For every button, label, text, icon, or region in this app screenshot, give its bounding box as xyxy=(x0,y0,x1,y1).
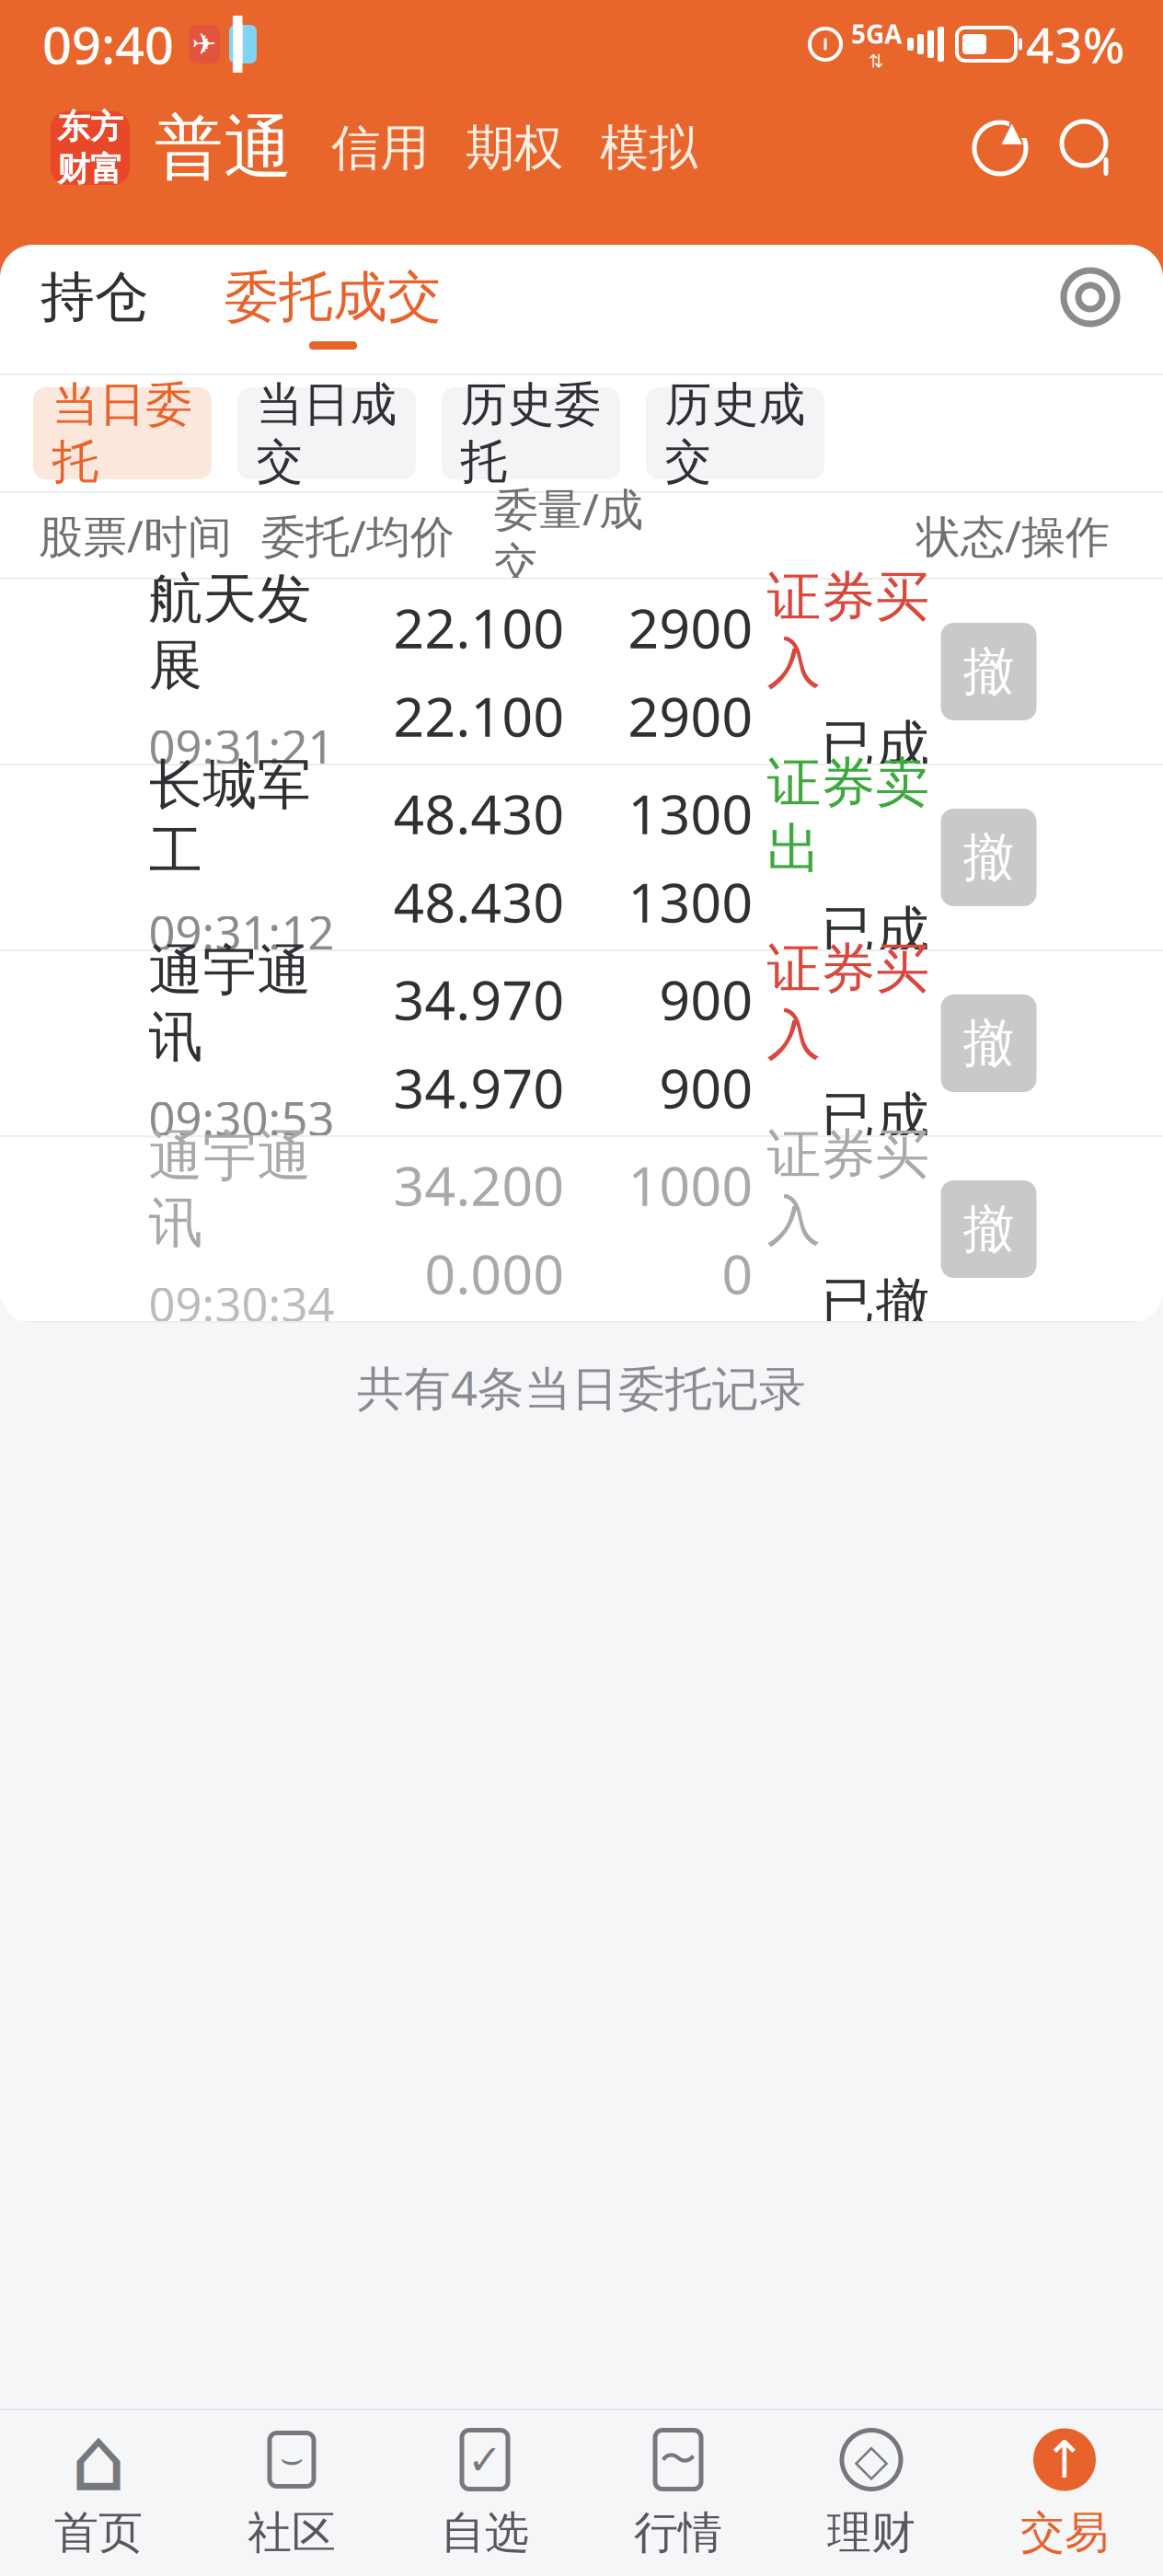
staticText: 首页 xyxy=(54,2506,143,2560)
staticText: 共有4条当日委托记录 xyxy=(357,1356,806,1418)
staticText: ⇅ xyxy=(869,51,884,72)
staticText: 1300 xyxy=(628,777,753,849)
staticText: 状态/操作 xyxy=(916,506,1110,565)
staticText: ⌂ xyxy=(70,2409,127,2510)
staticText: 社区 xyxy=(248,2506,336,2560)
staticText: 0.000 xyxy=(425,1237,564,1309)
staticText: 撤 xyxy=(963,640,1014,703)
staticText: ✓ xyxy=(467,2436,502,2483)
button[interactable]: 持仓 xyxy=(33,264,156,354)
staticText: 撤 xyxy=(963,826,1014,889)
staticText: 信用 xyxy=(331,118,429,178)
button[interactable]: 〜 xyxy=(581,2410,775,2576)
staticText: 34.970 xyxy=(393,1052,564,1123)
button[interactable]: 航天发展 xyxy=(0,580,1163,765)
staticText: 2900 xyxy=(628,592,753,663)
button[interactable]: 委托成交 xyxy=(217,264,449,354)
button[interactable]: 搜索 xyxy=(1056,116,1121,180)
staticText: 0 xyxy=(722,1237,753,1309)
button[interactable]: ⌣ xyxy=(195,2410,388,2576)
staticText: ▌▌ xyxy=(233,16,253,72)
button[interactable]: 当日成交 xyxy=(237,387,416,479)
button[interactable]: 设置 xyxy=(1054,261,1126,357)
staticText: 证券买入 xyxy=(767,564,930,696)
staticText: 已成 xyxy=(821,899,930,965)
staticText: 34.970 xyxy=(393,963,564,1035)
staticText: 证券买入 xyxy=(767,1121,930,1254)
button[interactable]: 撤 xyxy=(941,809,1036,906)
staticText: 历史委托 xyxy=(461,376,601,491)
button[interactable]: 撤 xyxy=(941,1180,1036,1278)
staticText: 48.430 xyxy=(393,866,564,937)
button[interactable]: 期权 xyxy=(454,118,575,178)
staticText: ◇ xyxy=(854,2435,888,2485)
staticText: 东方 xyxy=(57,107,123,147)
staticText: 当日委托 xyxy=(52,376,193,491)
staticText: 航天发展 xyxy=(149,566,311,699)
staticText: 09:31:21 xyxy=(149,715,334,777)
staticText: 期权 xyxy=(466,118,563,178)
staticText: 〜 xyxy=(660,2437,697,2482)
staticText: 当日成交 xyxy=(256,376,397,491)
staticText: 历史成交 xyxy=(665,376,806,491)
staticText: 09:30:34 xyxy=(149,1273,334,1335)
staticText: 43% xyxy=(1026,12,1124,77)
staticText: 委托成交 xyxy=(225,264,442,330)
staticText: 1000 xyxy=(628,1149,753,1221)
staticText: 行情 xyxy=(634,2506,722,2560)
staticText: 通宇通讯 xyxy=(149,938,311,1070)
button[interactable]: ↑ xyxy=(968,2410,1161,2576)
button[interactable]: 历史委托 xyxy=(442,387,620,479)
button[interactable]: ⌂ xyxy=(2,2410,195,2576)
staticText: 证券卖出 xyxy=(767,750,930,882)
button[interactable]: ◇ xyxy=(775,2410,968,2576)
staticText: 普通 xyxy=(155,106,293,190)
staticText: ▲ xyxy=(1002,116,1023,147)
button[interactable]: 刷新 xyxy=(968,116,1032,180)
staticText: 已撤 xyxy=(821,1271,930,1337)
staticText: 900 xyxy=(659,1052,753,1123)
staticText: 48.430 xyxy=(393,777,564,849)
staticText: 理财 xyxy=(827,2506,915,2560)
staticText: 长城军工 xyxy=(149,752,311,884)
staticText: 委托/均价 xyxy=(261,506,455,565)
staticText: 持仓 xyxy=(40,264,149,330)
button[interactable]: 撤 xyxy=(941,995,1036,1092)
button[interactable]: 长城军工 xyxy=(0,765,1163,951)
staticText: 09:31:12 xyxy=(149,901,334,963)
button[interactable]: 撤 xyxy=(941,623,1036,720)
button[interactable]: 通宇通讯 xyxy=(0,1137,1163,1323)
staticText: 2900 xyxy=(628,680,753,752)
button[interactable]: 模拟 xyxy=(588,118,709,178)
staticText: 1300 xyxy=(628,866,753,937)
button[interactable]: 当日委托 xyxy=(33,387,212,479)
staticText: 已成 xyxy=(821,713,930,779)
staticText: 交易 xyxy=(1020,2506,1109,2560)
staticText: 模拟 xyxy=(600,118,697,178)
staticText: 证券买入 xyxy=(767,936,930,1068)
staticText: 5GA xyxy=(851,17,902,51)
button[interactable]: 信用 xyxy=(319,118,441,178)
staticText: 已成 xyxy=(821,1085,930,1151)
staticText: ✈ xyxy=(192,27,217,61)
staticText: 22.100 xyxy=(393,592,564,663)
staticText: 22.100 xyxy=(393,680,564,752)
staticText: 股票/时间 xyxy=(39,506,232,565)
button[interactable]: 普通 xyxy=(143,106,305,190)
staticText: 900 xyxy=(659,963,753,1035)
staticText: ⌣ xyxy=(280,2442,304,2478)
staticText: 委量/成交 xyxy=(494,479,643,592)
staticText: 撤 xyxy=(963,1012,1014,1075)
staticText: 撤 xyxy=(963,1197,1014,1261)
staticText: 09:40 xyxy=(42,10,174,78)
staticText: 财富 xyxy=(57,149,123,190)
button[interactable]: 历史成交 xyxy=(646,387,824,479)
button[interactable]: ✓ xyxy=(388,2410,581,2576)
staticText: 09:30:53 xyxy=(149,1087,334,1149)
staticText: 通宇通讯 xyxy=(149,1124,311,1256)
staticText: 自选 xyxy=(441,2506,529,2560)
staticText: ↑ xyxy=(1043,2430,1086,2489)
staticText: 34.200 xyxy=(393,1149,564,1221)
button[interactable]: 通宇通讯 xyxy=(0,951,1163,1137)
